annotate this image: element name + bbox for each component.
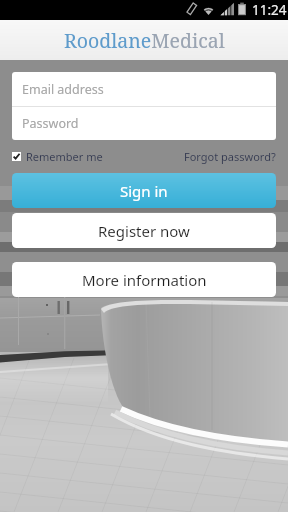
staticText: Remember me bbox=[26, 149, 103, 164]
staticText: More information bbox=[82, 270, 207, 290]
button[interactable]: Sign in bbox=[12, 173, 276, 208]
button[interactable]: Email address bbox=[12, 72, 276, 106]
button[interactable]: Remember me bbox=[12, 149, 103, 164]
staticText: Password bbox=[22, 115, 79, 132]
button[interactable]: More information bbox=[12, 262, 276, 297]
button[interactable]: Register now bbox=[12, 213, 276, 248]
staticText: 11:24 bbox=[252, 1, 287, 19]
staticText: Sign in bbox=[120, 181, 168, 201]
staticText: Register now bbox=[98, 221, 190, 241]
staticText: RoodlaneMedical bbox=[64, 27, 225, 54]
button[interactable]: Forgot password? bbox=[184, 149, 276, 164]
button[interactable]: Password bbox=[12, 107, 276, 140]
staticText: Email address bbox=[22, 81, 104, 98]
